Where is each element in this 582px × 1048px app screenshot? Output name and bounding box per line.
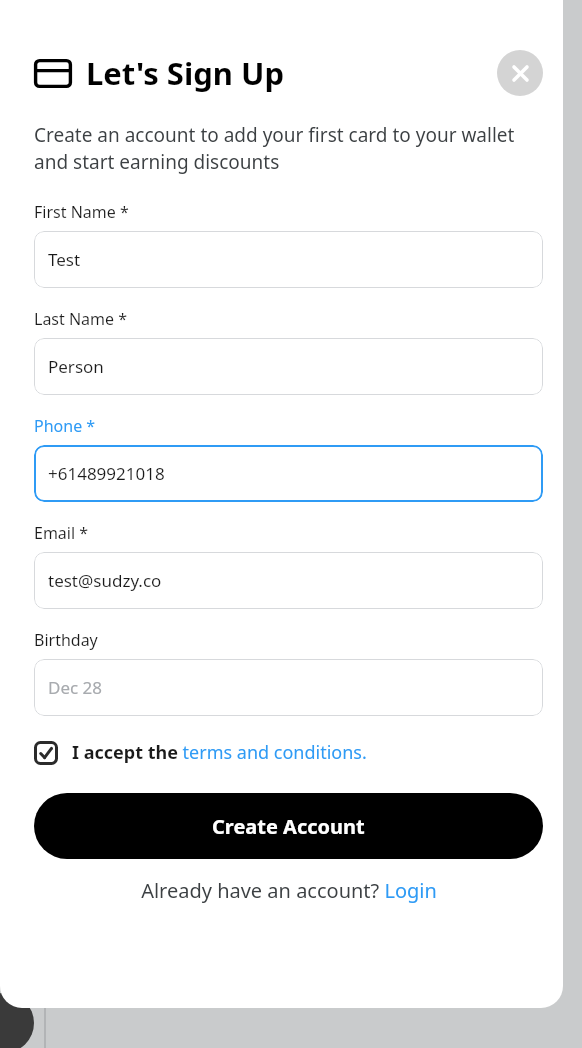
button[interactable]: Already have an account? Login xyxy=(141,877,437,904)
staticText: I accept the terms and conditions. xyxy=(72,740,367,765)
staticText: +61489921018 xyxy=(48,462,165,485)
button[interactable]: Person xyxy=(34,338,543,395)
button[interactable]: Close xyxy=(497,50,543,96)
staticText: Email * xyxy=(34,522,89,544)
button[interactable]: Test xyxy=(34,231,543,288)
button[interactable]: Create Account xyxy=(34,793,543,859)
button[interactable]: I accept the terms and conditions. xyxy=(34,738,367,767)
button[interactable]: Dec 28 xyxy=(34,659,543,716)
staticText: Dec 28 xyxy=(48,676,103,699)
staticText: First Name * xyxy=(34,201,129,223)
staticText: Let's Sign Up xyxy=(86,52,285,94)
staticText: Person xyxy=(48,355,104,378)
button[interactable]: test@sudzy.co xyxy=(34,552,543,609)
button[interactable]: +61489921018 xyxy=(34,445,543,502)
staticText: Test xyxy=(48,248,81,271)
staticText: Create an account to add your first card… xyxy=(34,122,531,175)
staticText: Last Name * xyxy=(34,308,128,330)
staticText: Create Account xyxy=(212,813,365,840)
staticText: Birthday xyxy=(34,629,98,651)
staticText: Phone * xyxy=(34,415,96,437)
staticText: test@sudzy.co xyxy=(48,569,162,592)
